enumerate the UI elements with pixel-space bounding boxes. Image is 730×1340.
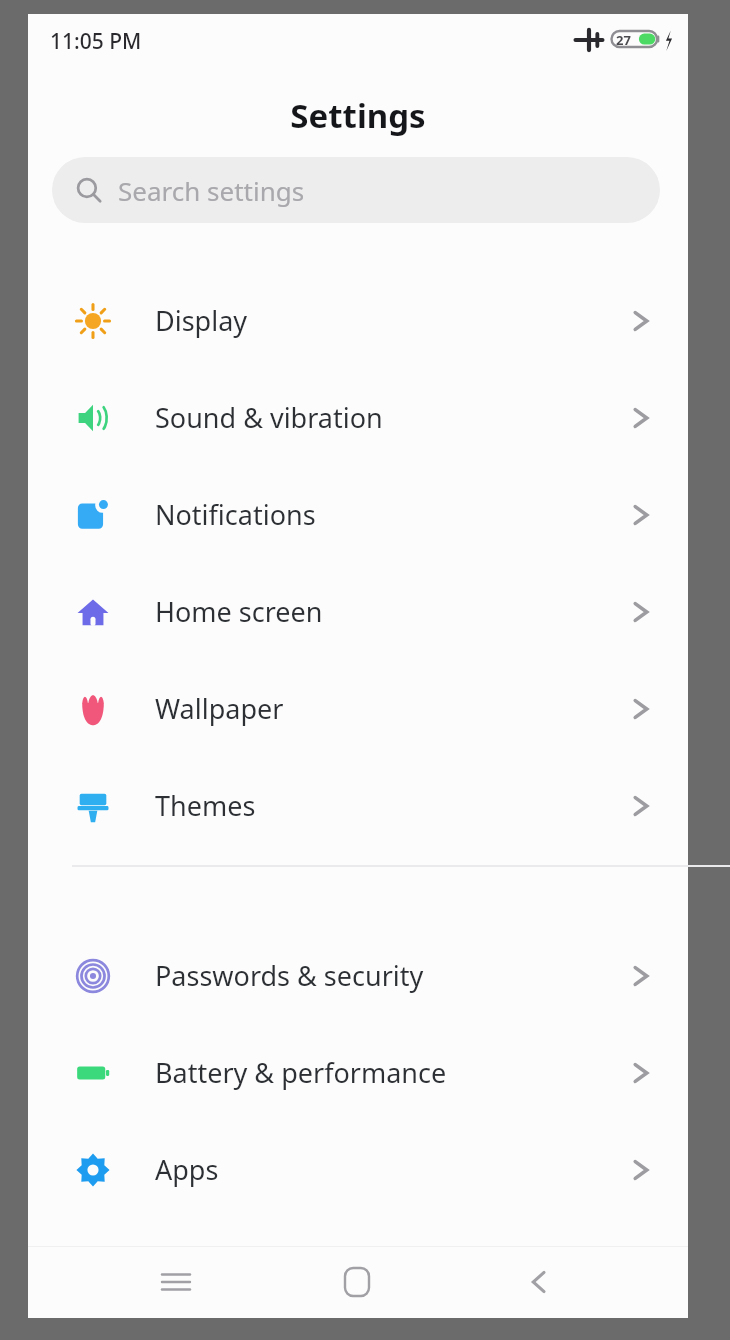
staticText: Battery & performance — [155, 1054, 632, 1091]
button[interactable]: Back — [506, 1249, 572, 1315]
staticText: Display — [155, 302, 632, 339]
button[interactable]: Display — [28, 272, 688, 369]
button[interactable]: Wallpaper — [28, 660, 688, 757]
button[interactable]: Home — [324, 1249, 390, 1315]
button[interactable]: Recent apps — [143, 1249, 209, 1315]
staticText: Additional settings — [155, 1248, 632, 1285]
button[interactable]: Passwords & security — [28, 927, 688, 1024]
staticText: Apps — [155, 1151, 632, 1188]
button[interactable]: Home screen — [28, 563, 688, 660]
staticText: Search settings — [118, 173, 305, 208]
staticText: Sound & vibration — [155, 399, 632, 436]
staticText: 27 — [616, 31, 631, 49]
staticText: 11:05 PM — [50, 27, 142, 56]
staticText: Themes — [155, 787, 632, 824]
button[interactable]: Themes — [28, 757, 688, 854]
button[interactable]: Search settings — [52, 157, 660, 223]
button[interactable]: Battery & performance — [28, 1024, 688, 1121]
button[interactable]: Apps — [28, 1121, 688, 1218]
button[interactable]: Additional settings — [28, 1218, 688, 1315]
staticText: Wallpaper — [155, 690, 632, 727]
staticText: Passwords & security — [155, 957, 632, 994]
staticText: Settings — [290, 93, 426, 138]
button[interactable]: Sound & vibration — [28, 369, 688, 466]
staticText: Notifications — [155, 496, 632, 533]
staticText: Home screen — [155, 593, 632, 630]
button[interactable]: Notifications — [28, 466, 688, 563]
